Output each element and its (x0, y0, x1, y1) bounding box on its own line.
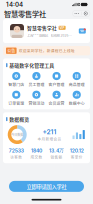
staticText: 订单管理 (8, 100, 24, 106)
staticText: 基础数字化管理工具 (9, 62, 54, 69)
staticText: 13.4万 (49, 147, 64, 154)
button[interactable]: 立即申请加入学社 (9, 181, 84, 192)
staticText: 客单价 (71, 154, 83, 160)
button[interactable]: 数据中心 (67, 91, 87, 106)
staticText: 智慧零售学社 (4, 8, 46, 19)
staticText: 立即申请加入学社 (26, 182, 66, 190)
staticText: 营销活动 (28, 100, 44, 106)
staticText: 访客数 (10, 154, 22, 160)
staticText: 数据中心 (69, 100, 85, 106)
staticText: 会员运营 (49, 100, 65, 106)
button[interactable]: More options (72, 10, 81, 17)
button[interactable]: 智慧门店 (6, 72, 26, 87)
staticText: 上海***旗舰店 (27, 33, 48, 38)
button[interactable]: 会员运营 (46, 91, 67, 106)
staticText: 有效期 2026.12.31 (51, 33, 72, 38)
button[interactable]: 公告 (3, 46, 90, 55)
staticText: 120.12 (70, 148, 84, 154)
staticText: +211 (43, 128, 57, 136)
staticText: 今日数据 (11, 132, 23, 137)
staticText: 成交数 (30, 154, 42, 160)
staticText: 商品管理 (69, 82, 85, 87)
staticText: 数据概览 (9, 115, 29, 123)
button[interactable]: Close mini program (81, 10, 90, 17)
button[interactable]: 员工管理 (26, 72, 46, 87)
staticText: 销售额 (51, 155, 63, 160)
staticText: 智慧门店 (8, 82, 24, 87)
staticText: 员工管理 (28, 82, 44, 87)
button[interactable]: 订单管理 (6, 91, 26, 106)
button[interactable]: 营销活动 (26, 91, 46, 106)
staticText: 1840 (31, 148, 42, 154)
staticText: 14:04 (6, 1, 23, 8)
staticText: 本月新增会员 (38, 136, 62, 141)
staticText: 智慧零售学社 (27, 24, 57, 31)
staticText: 公告 (7, 48, 15, 54)
staticText: 欢迎来到学社，新课程已上线啦 (19, 48, 75, 53)
staticText: VIP (60, 26, 65, 30)
button[interactable]: 商品管理 (67, 72, 87, 87)
button[interactable]: 智慧零售学社 (3, 19, 90, 43)
staticText: 72533 (9, 148, 24, 154)
staticText: 客户管理 (49, 82, 65, 87)
button[interactable]: 客户管理 (46, 72, 67, 87)
